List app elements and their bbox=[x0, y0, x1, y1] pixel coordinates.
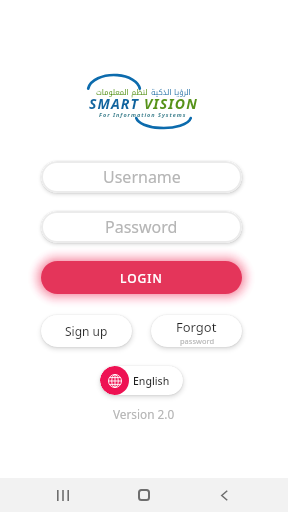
button[interactable]: Sign up bbox=[41, 315, 132, 347]
staticText: Password bbox=[105, 216, 178, 238]
staticText: For Information Systems bbox=[99, 111, 187, 118]
button[interactable]: Recent apps bbox=[35, 478, 91, 512]
button[interactable]: Forgot bbox=[151, 315, 242, 347]
button[interactable]: Home bbox=[116, 478, 172, 512]
staticText: لنظم المعلومات bbox=[96, 85, 148, 99]
staticText: Username bbox=[103, 166, 181, 188]
button[interactable]: Username bbox=[41, 161, 242, 193]
staticText: password bbox=[180, 336, 214, 346]
button[interactable]: English bbox=[100, 366, 183, 395]
staticText: SMART bbox=[89, 94, 140, 113]
button[interactable]: LOGIN bbox=[41, 261, 242, 294]
button[interactable]: Back bbox=[196, 478, 252, 512]
staticText: Version 2.0 bbox=[113, 406, 175, 422]
staticText: الرؤيا الذكية bbox=[151, 85, 191, 99]
staticText: Sign up bbox=[65, 323, 108, 339]
staticText: LOGIN bbox=[120, 270, 163, 286]
staticText: VISION bbox=[144, 94, 198, 113]
staticText: Forgot bbox=[176, 318, 217, 336]
staticText: English bbox=[133, 374, 170, 388]
button[interactable]: Password bbox=[41, 211, 242, 243]
